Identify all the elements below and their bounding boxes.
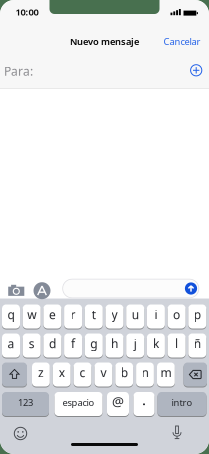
staticText: e: [49, 306, 56, 322]
button[interactable]: ñ: [188, 333, 206, 358]
button[interactable]: Añadir contacto: [189, 63, 203, 77]
staticText: intro: [171, 396, 192, 409]
button[interactable]: w: [23, 304, 41, 329]
button[interactable]: d: [43, 333, 61, 358]
button[interactable]: v: [94, 362, 112, 387]
button[interactable]: n: [136, 362, 154, 387]
staticText: j: [134, 335, 137, 351]
staticText: s: [29, 335, 35, 351]
button[interactable]: h: [105, 333, 123, 358]
staticText: Cancelar: [163, 35, 200, 48]
button[interactable]: o: [168, 304, 186, 329]
button[interactable]: Dictar: [171, 425, 183, 440]
button[interactable]: z: [32, 362, 50, 387]
button[interactable]: Borrar: [183, 362, 207, 387]
button[interactable]: Cámara: [7, 283, 26, 298]
button[interactable]: t: [85, 304, 103, 329]
staticText: z: [38, 364, 44, 380]
staticText: ñ: [194, 335, 201, 351]
button[interactable]: j: [126, 333, 144, 358]
button[interactable]: b: [115, 362, 133, 387]
staticText: espacio: [62, 396, 94, 409]
staticText: r: [71, 306, 76, 322]
button[interactable]: Punto: [133, 391, 154, 416]
staticText: g: [90, 335, 97, 351]
staticText: p: [194, 306, 201, 322]
staticText: a: [7, 335, 14, 351]
button[interactable]: l: [168, 333, 186, 358]
staticText: t: [92, 306, 96, 322]
button[interactable]: s: [23, 333, 41, 358]
staticText: Nuevo mensaje: [70, 35, 139, 48]
staticText: l: [175, 335, 178, 351]
staticText: 10:00: [15, 6, 38, 18]
button[interactable]: Cancelar: [163, 35, 200, 48]
button[interactable]: intro: [157, 391, 206, 416]
button[interactable]: Para: destinatario: [0, 54, 209, 87]
button[interactable]: Enviar: [185, 282, 197, 295]
button[interactable]: q: [2, 304, 20, 329]
button[interactable]: u: [126, 304, 144, 329]
staticText: i: [154, 306, 157, 322]
staticText: v: [100, 364, 106, 380]
button[interactable]: i: [147, 304, 165, 329]
button[interactable]: g: [85, 333, 103, 358]
staticText: b: [121, 364, 128, 380]
button[interactable]: espacio: [54, 391, 102, 416]
staticText: f: [71, 335, 75, 351]
button[interactable]: r: [64, 304, 82, 329]
staticText: q: [7, 306, 14, 322]
button[interactable]: x: [53, 362, 71, 387]
staticText: d: [49, 335, 56, 351]
button[interactable]: e: [43, 304, 61, 329]
staticText: x: [59, 364, 65, 380]
button[interactable]: f: [64, 333, 82, 358]
staticText: u: [132, 306, 139, 322]
button[interactable]: @: [107, 391, 129, 416]
button[interactable]: c: [74, 362, 91, 387]
staticText: w: [27, 306, 36, 322]
button[interactable]: y: [105, 304, 123, 329]
staticText: y: [111, 306, 117, 322]
staticText: o: [173, 306, 180, 322]
staticText: k: [153, 335, 159, 351]
button[interactable]: m: [157, 362, 175, 387]
staticText: m: [160, 364, 171, 380]
button[interactable]: Mayúsculas: [2, 362, 27, 387]
staticText: h: [111, 335, 118, 351]
button[interactable]: Apps de iMessage: [33, 282, 50, 299]
button[interactable]: a: [2, 333, 20, 358]
staticText: c: [79, 364, 85, 380]
staticText: 123: [18, 396, 33, 409]
button[interactable]: p: [188, 304, 206, 329]
button[interactable]: Campo de mensaje: [62, 279, 199, 298]
button[interactable]: Emoji: [12, 425, 28, 441]
staticText: n: [141, 364, 148, 380]
button[interactable]: k: [147, 333, 165, 358]
staticText: Para:: [4, 63, 33, 79]
staticText: @: [112, 392, 124, 410]
button[interactable]: 123: [2, 391, 49, 416]
